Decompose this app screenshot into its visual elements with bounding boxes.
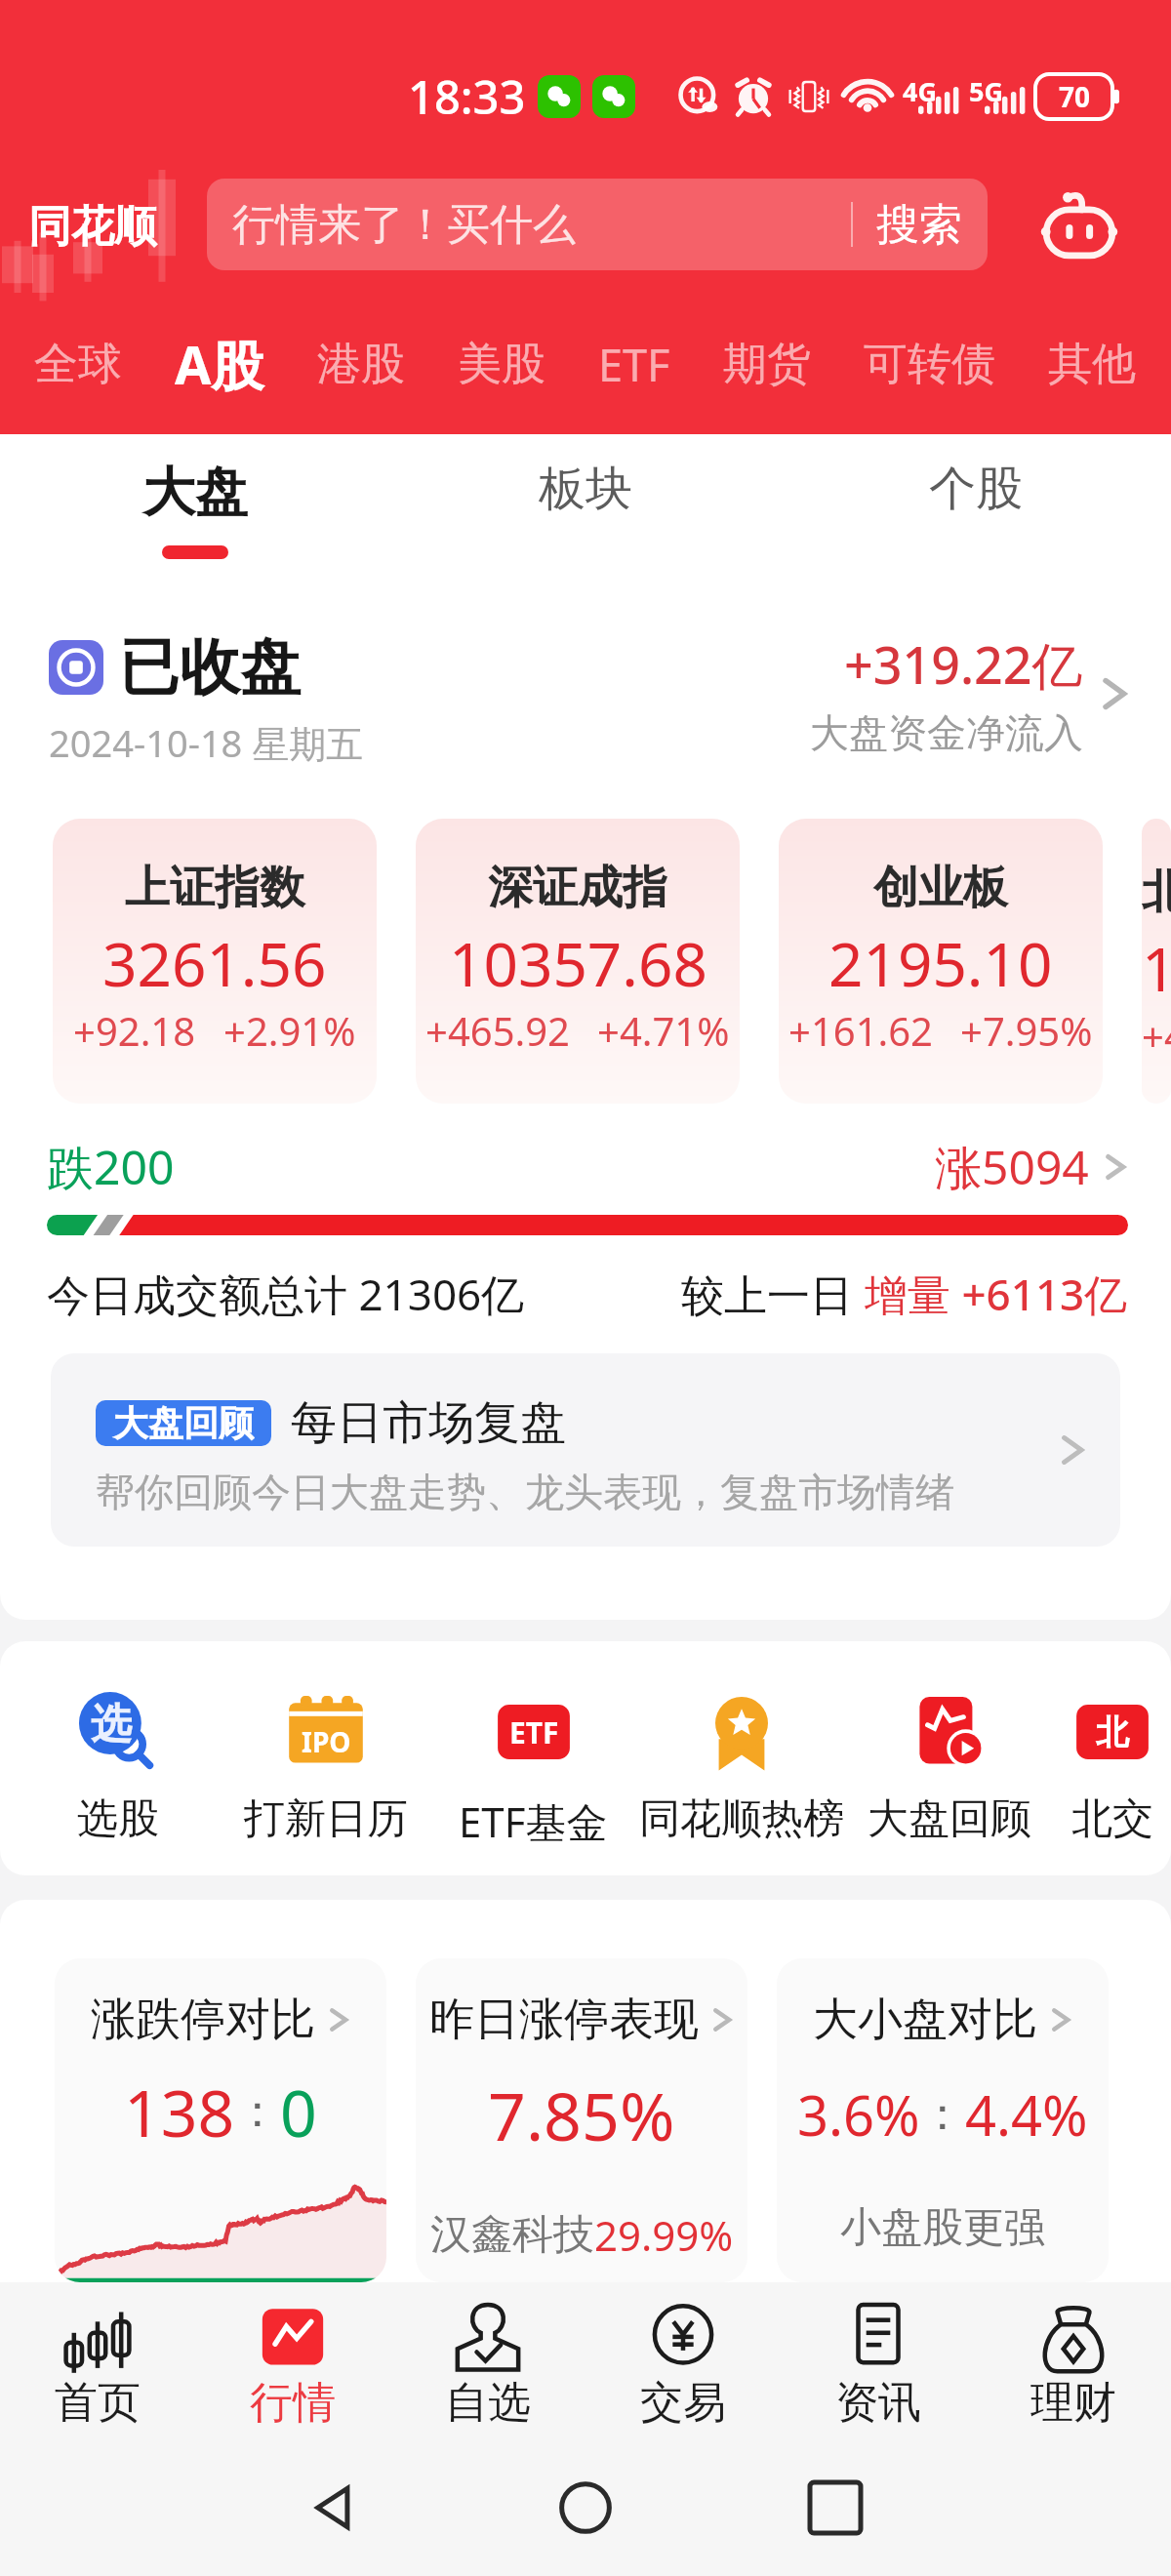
button[interactable]: 返回: [289, 2463, 379, 2553]
button[interactable]: ETF: [429, 1641, 637, 1849]
staticText: 港股: [317, 337, 405, 392]
staticText: 大小盘对比: [813, 1992, 1037, 2048]
staticText: 理财: [1030, 2376, 1116, 2430]
button[interactable]: 北证50: [1142, 819, 1171, 1104]
staticText: 今日成交额总计 21306亿: [47, 1265, 525, 1323]
button[interactable]: 北: [1053, 1641, 1171, 1845]
staticText: 5G: [969, 73, 1003, 109]
staticText: 搜索: [876, 198, 962, 252]
button[interactable]: 美股: [431, 323, 572, 406]
staticText: 4.4%: [965, 2077, 1088, 2152]
staticText: 首页: [55, 2376, 141, 2430]
button[interactable]: 涨跌停对比: [55, 1958, 386, 2282]
button[interactable]: 可转债: [837, 323, 1022, 406]
staticText: 个股: [929, 460, 1023, 518]
staticText: 创业板: [873, 860, 1008, 916]
button[interactable]: AI 助手: [1032, 178, 1126, 271]
button[interactable]: 资讯: [781, 2296, 976, 2439]
button[interactable]: 大小盘对比: [777, 1958, 1109, 2282]
staticText: 3.6%: [797, 2077, 920, 2152]
staticText: 交易: [640, 2376, 726, 2430]
button[interactable]: IPO: [222, 1641, 429, 1845]
button[interactable]: 主页: [541, 2463, 630, 2553]
staticText: 每日市场复盘: [291, 1394, 566, 1452]
staticText: 汉鑫科技: [430, 2209, 594, 2261]
button[interactable]: 行情来了！买什么: [207, 179, 988, 270]
button[interactable]: 大盘回顾: [845, 1641, 1053, 1845]
staticText: 选股: [77, 1793, 159, 1845]
staticText: 北: [1096, 1711, 1129, 1753]
staticText: 大盘: [142, 460, 248, 526]
button[interactable]: 个股: [781, 434, 1171, 581]
button[interactable]: 深证成指: [416, 819, 740, 1104]
staticText: 跌200: [47, 1135, 175, 1199]
button[interactable]: A股: [148, 314, 291, 414]
staticText: 美股: [458, 337, 545, 392]
staticText: +319.22亿: [844, 629, 1083, 699]
button[interactable]: 板块: [390, 434, 781, 581]
staticText: 可转债: [864, 337, 995, 392]
staticText: 帮你回顾今日大盘走势、龙头表现，复盘市场情绪: [96, 1468, 954, 1516]
staticText: 选: [91, 1699, 132, 1751]
button[interactable]: 同花顺热榜: [637, 1641, 845, 1845]
staticText: 板块: [539, 460, 632, 518]
staticText: +161.62: [788, 1004, 933, 1057]
staticText: 70: [1059, 78, 1091, 115]
button[interactable]: ETF: [572, 321, 697, 408]
staticText: 期货: [723, 337, 811, 392]
staticText: ：: [920, 2086, 965, 2143]
staticText: 自选: [445, 2376, 531, 2430]
button[interactable]: 创业板: [779, 819, 1103, 1104]
staticText: 涨5094: [935, 1135, 1089, 1199]
staticText: 增量 +6113亿: [865, 1265, 1128, 1323]
staticText: ：: [235, 2083, 280, 2140]
button[interactable]: 交易: [585, 2296, 781, 2439]
staticText: 7.85%: [488, 2070, 675, 2160]
button[interactable]: 涨跌详情: [1103, 1146, 1128, 1188]
staticText: 小盘股更强: [840, 2202, 1045, 2254]
staticText: 北交: [1071, 1793, 1153, 1845]
button[interactable]: 大盘回顾: [51, 1353, 1120, 1547]
button[interactable]: 全球: [8, 323, 148, 406]
staticText: A股: [175, 328, 264, 400]
staticText: 其他: [1048, 337, 1136, 392]
staticText: +465.92: [425, 1004, 570, 1057]
staticText: 行情: [250, 2376, 336, 2430]
staticText: 大盘回顾: [113, 1401, 254, 1445]
staticText: 深证成指: [488, 860, 667, 916]
staticText: 昨日涨停表现: [429, 1992, 699, 2048]
button[interactable]: 资金流入详情: [1099, 666, 1130, 721]
staticText: ETF基金: [459, 1793, 608, 1849]
button[interactable]: 其他: [1022, 323, 1162, 406]
button[interactable]: 自选: [390, 2296, 585, 2439]
button[interactable]: 行情: [195, 2296, 390, 2439]
staticText: 大盘资金净流入: [810, 708, 1083, 757]
button[interactable]: 首页: [0, 2296, 195, 2439]
staticText: 4G: [903, 73, 937, 109]
staticText: ETF: [509, 1712, 559, 1752]
staticText: +49.10: [1142, 1009, 1171, 1062]
staticText: 29.99%: [594, 2207, 734, 2263]
staticText: 较上一日: [681, 1265, 865, 1323]
button[interactable]: 选: [14, 1641, 222, 1845]
staticText: IPO: [302, 1723, 351, 1760]
staticText: 2024-10-18 星期五: [49, 717, 364, 768]
staticText: 0: [280, 2068, 317, 2155]
button[interactable]: 期货: [697, 323, 837, 406]
staticText: 3261.56: [102, 922, 327, 1004]
button[interactable]: 最近任务: [790, 2463, 880, 2553]
staticText: 同花顺: [28, 200, 157, 254]
staticText: 138: [124, 2068, 235, 2155]
staticText: 同花顺热榜: [639, 1793, 844, 1845]
button[interactable]: 理财: [976, 2296, 1171, 2439]
staticText: 打新日历: [244, 1793, 408, 1845]
staticText: 18:33: [408, 65, 526, 128]
staticText: +4.71%: [597, 1004, 730, 1057]
button[interactable]: 港股: [291, 323, 431, 406]
staticText: 上证指数: [125, 860, 304, 916]
button[interactable]: 昨日涨停表现: [416, 1958, 747, 2282]
staticText: +2.91%: [223, 1004, 356, 1057]
button[interactable]: 上证指数: [53, 819, 377, 1104]
staticText: 2195.10: [828, 922, 1053, 1004]
button[interactable]: 大盘: [0, 434, 390, 581]
